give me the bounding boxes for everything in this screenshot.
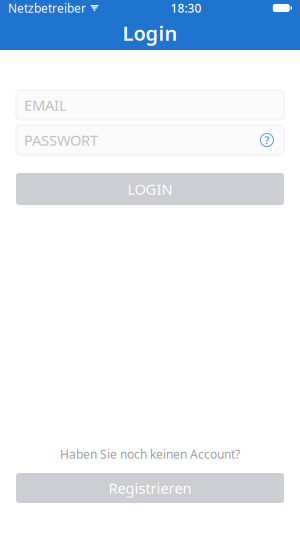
staticText: ? xyxy=(264,133,269,147)
staticText: PASSWORT xyxy=(24,130,98,150)
staticText: 18:30 xyxy=(170,0,201,16)
button[interactable]: LOGIN xyxy=(16,173,284,205)
staticText: LOGIN xyxy=(127,179,172,199)
staticText: EMAIL xyxy=(24,95,67,115)
staticText: Login xyxy=(122,20,177,46)
staticText: Netzbetreiber xyxy=(8,0,86,16)
button[interactable]: Registrieren xyxy=(16,473,284,503)
button[interactable]: Passwort vergessen – Hilfe xyxy=(256,125,278,155)
staticText: Haben Sie noch keinen Account? xyxy=(60,446,240,462)
staticText: Registrieren xyxy=(108,478,191,498)
